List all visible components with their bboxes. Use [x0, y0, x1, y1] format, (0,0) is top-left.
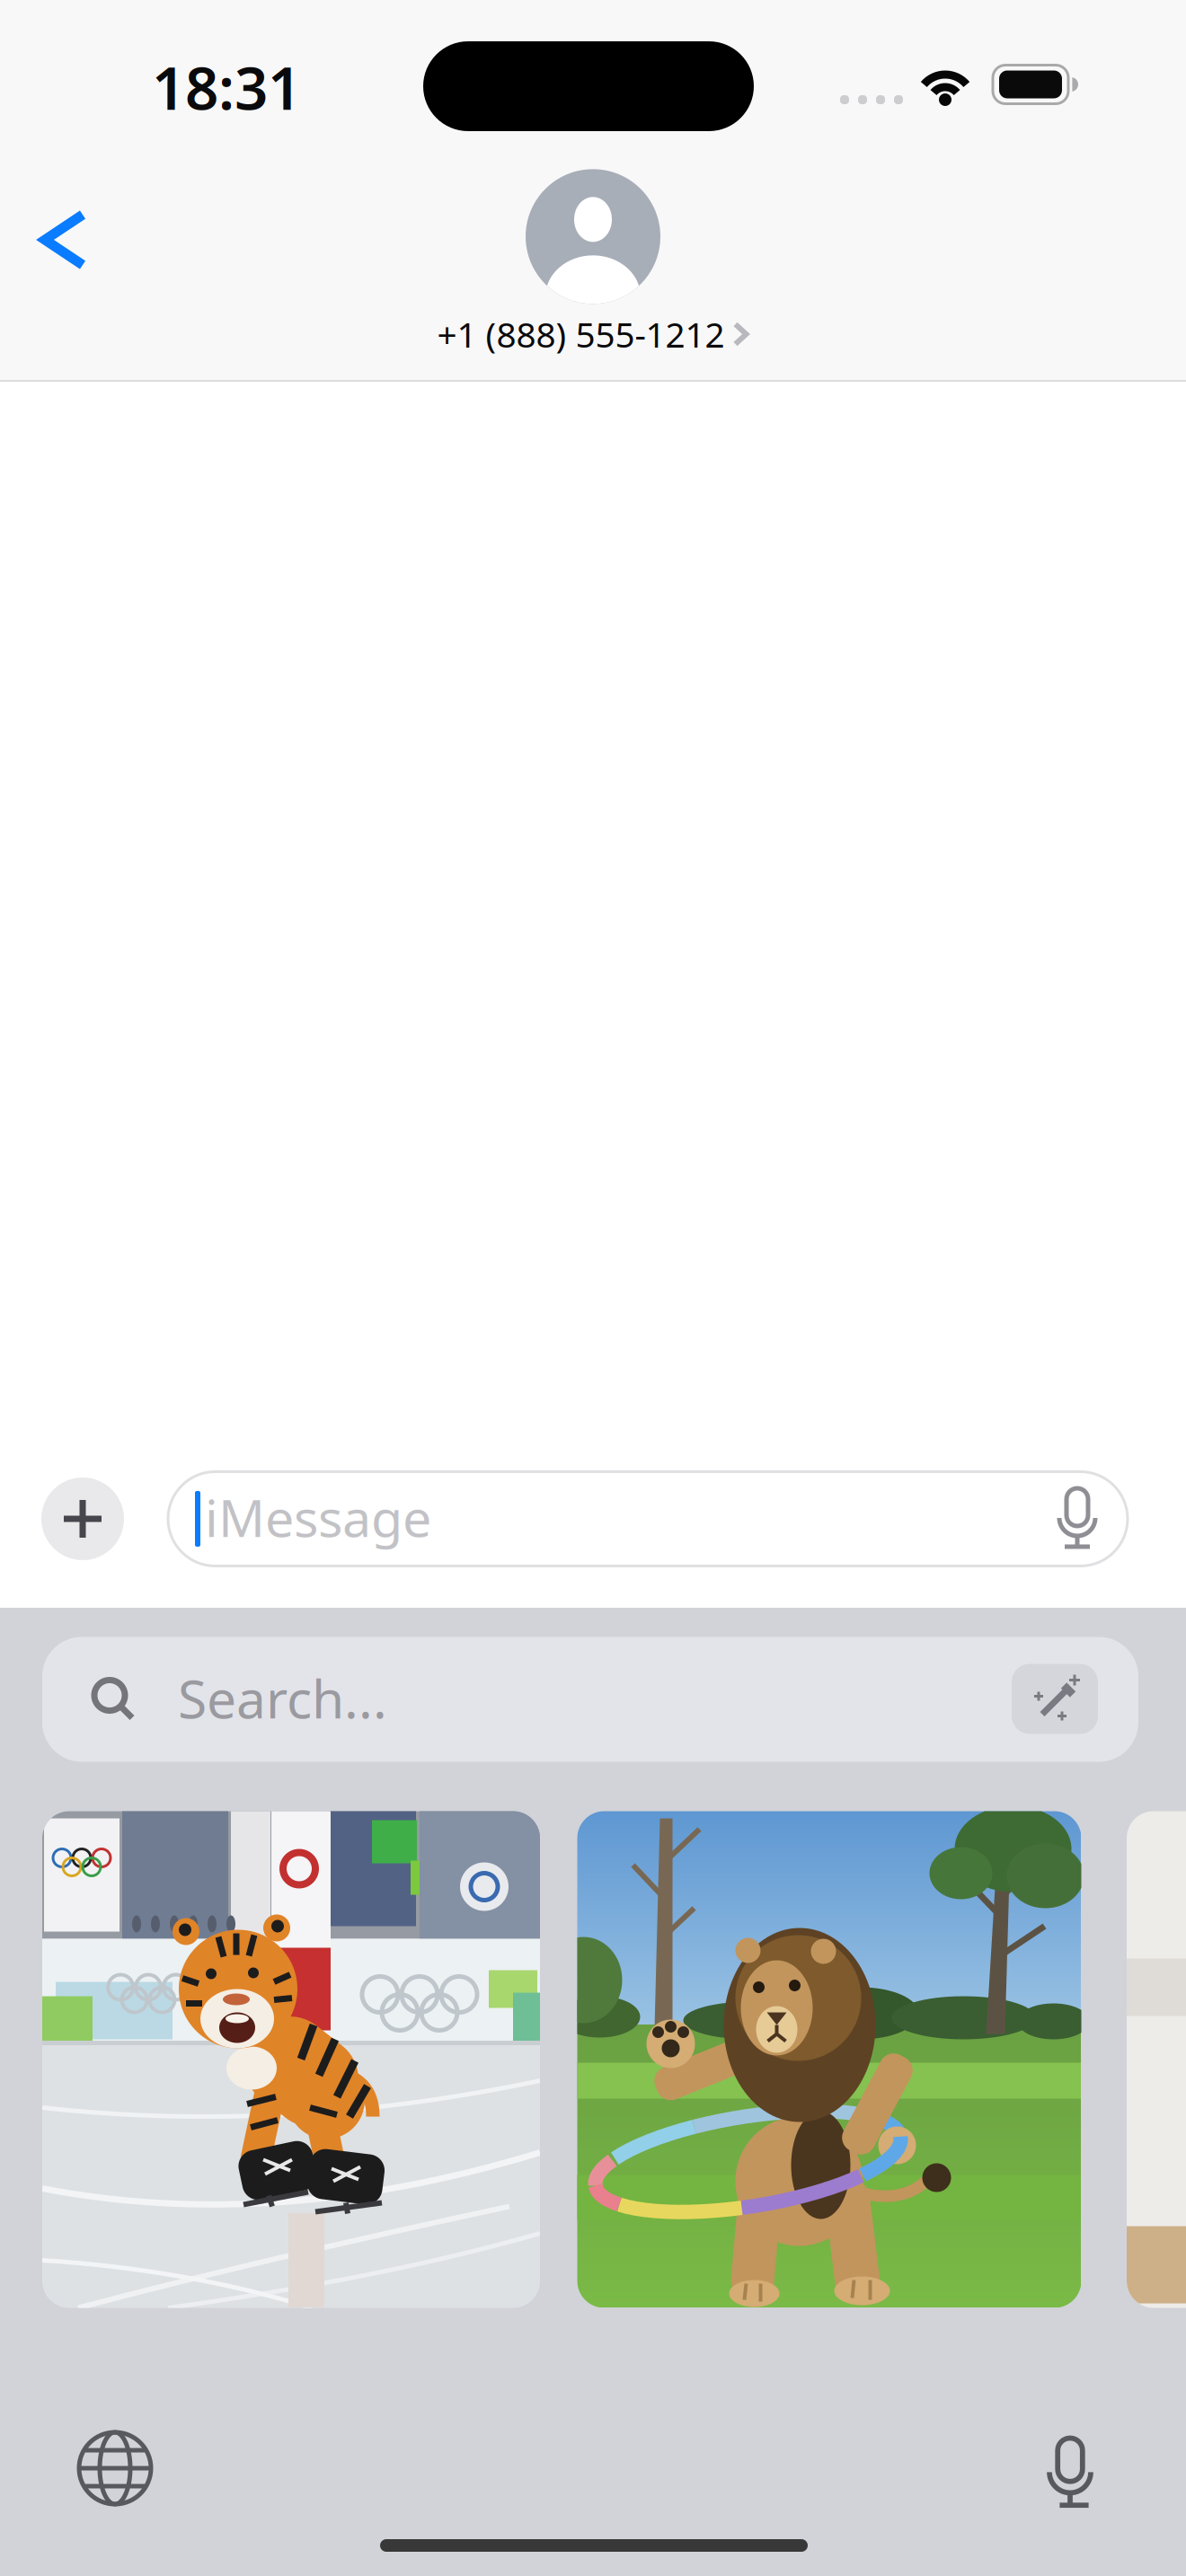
button[interactable] — [1127, 1811, 1186, 2308]
button[interactable] — [1050, 1486, 1104, 1552]
button[interactable]: +1 (888) 555-1212 — [437, 169, 749, 357]
staticText: 18:31 — [152, 48, 301, 126]
button[interactable] — [41, 1478, 124, 1560]
staticText: iMessage — [205, 1483, 431, 1551]
button[interactable] — [577, 1811, 1081, 2308]
button[interactable] — [75, 2428, 155, 2509]
button[interactable]: Search... — [42, 1637, 1138, 1762]
button[interactable] — [36, 209, 93, 270]
staticText: +1 (888) 555-1212 — [437, 311, 725, 357]
button[interactable] — [1043, 2430, 1097, 2506]
staticText: Search... — [178, 1663, 387, 1733]
button[interactable] — [42, 1811, 540, 2308]
button[interactable] — [1012, 1664, 1098, 1734]
